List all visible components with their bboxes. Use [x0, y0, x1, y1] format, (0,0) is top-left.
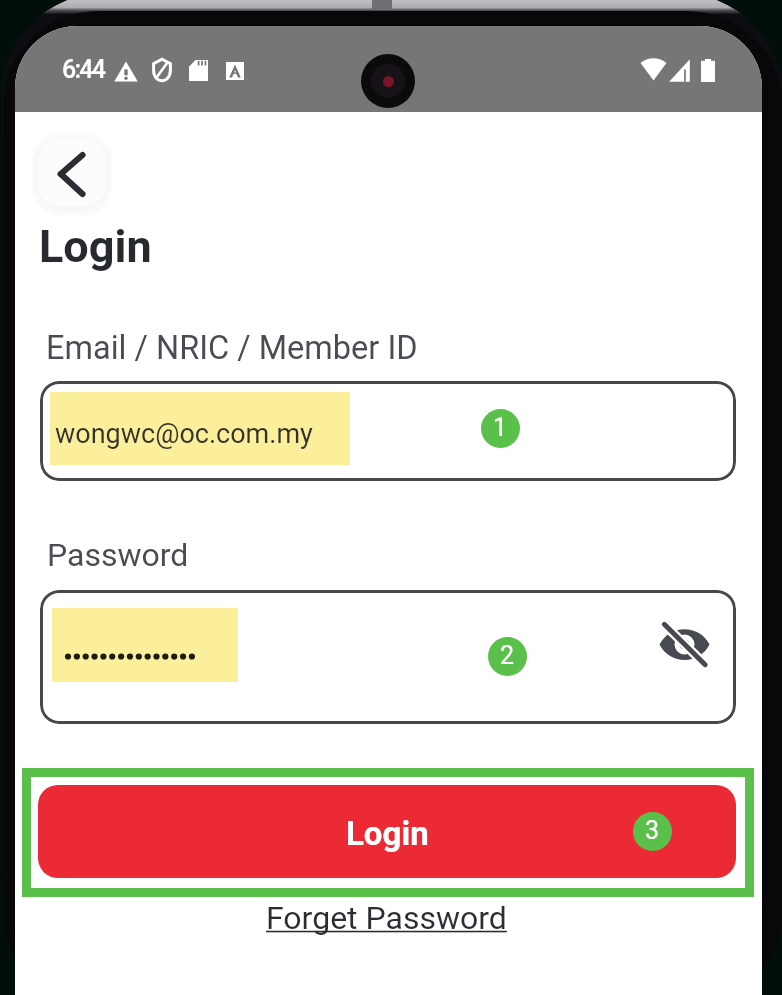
staticText: wongwc@oc.com.my [55, 418, 313, 450]
staticText: Password [47, 536, 189, 574]
staticText: Email / NRIC / Member ID [46, 329, 418, 367]
button[interactable]: Back [38, 138, 106, 206]
staticText: 6:44 [62, 55, 105, 84]
staticText: 1 [493, 413, 508, 442]
button[interactable]: Show password [659, 619, 711, 671]
button[interactable]: Login [38, 785, 736, 878]
button[interactable]: Forget Password [266, 899, 507, 937]
staticText: 3 [645, 816, 660, 845]
button[interactable]: 2 [40, 590, 736, 724]
staticText: Login [346, 814, 429, 853]
staticText: Login [39, 220, 152, 273]
staticText: 2 [500, 641, 515, 670]
button[interactable]: wongwc@oc.com.my [40, 381, 736, 481]
